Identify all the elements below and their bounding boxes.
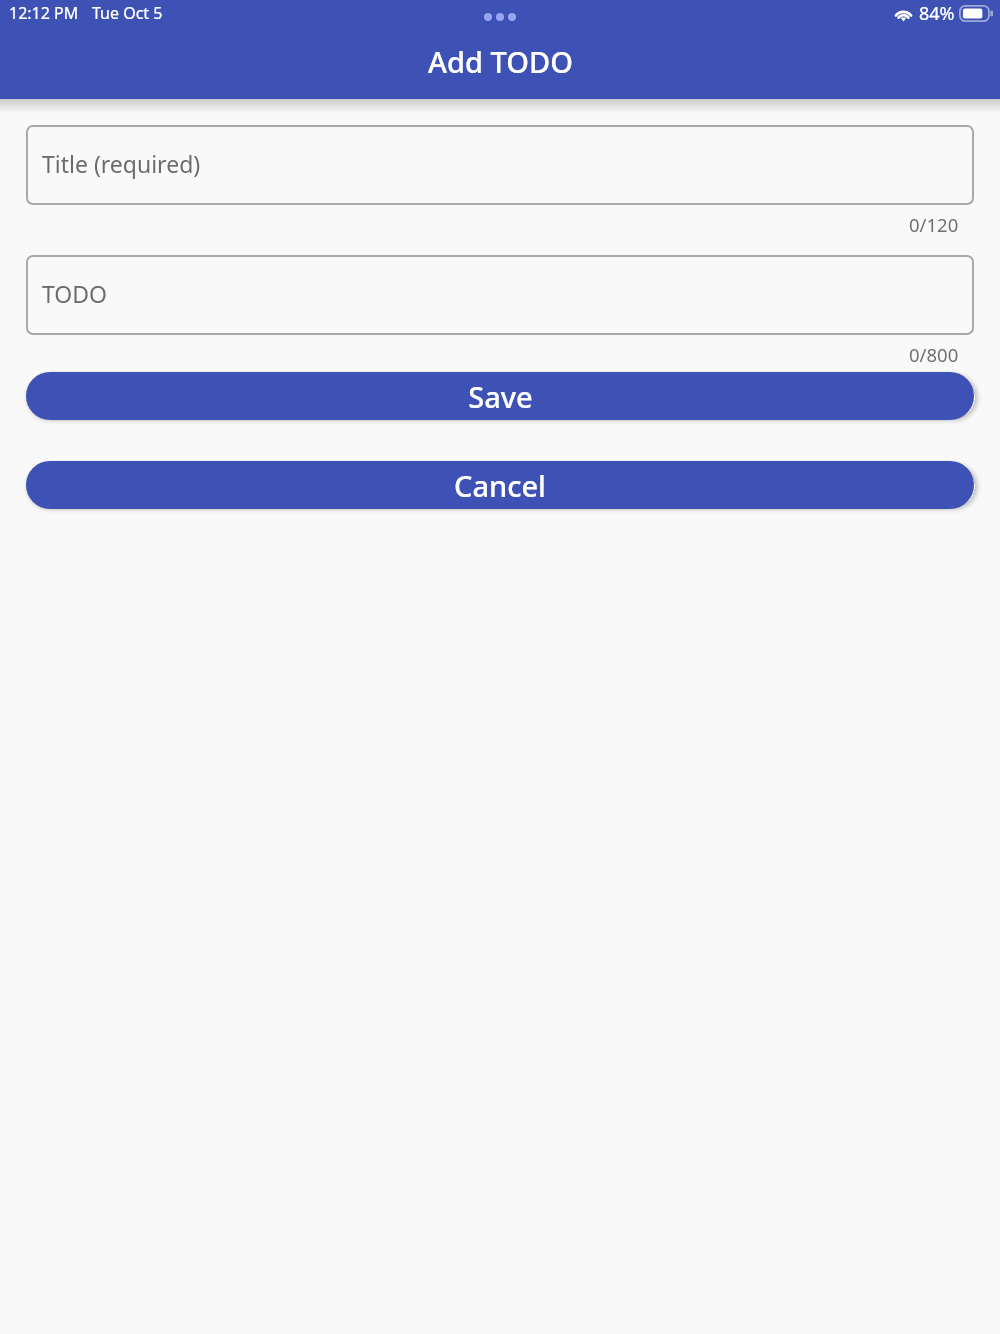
button[interactable]: Title (required) (26, 125, 974, 205)
button[interactable]: Save (26, 372, 974, 420)
staticText: 84% (919, 1, 955, 26)
staticText: Add TODO (428, 42, 573, 81)
other: Battery 84 percent (959, 5, 994, 22)
staticText: 0/800 (909, 342, 959, 364)
staticText: Tue Oct 5 (92, 2, 163, 24)
other: Wi-Fi (893, 5, 914, 22)
staticText: Title (required) (42, 148, 201, 179)
staticText: 0/120 (909, 212, 959, 234)
staticText: TODO (42, 278, 108, 309)
button[interactable]: Cancel (26, 461, 974, 509)
staticText: Save (468, 377, 533, 416)
button[interactable]: TODO (26, 255, 974, 335)
staticText: Cancel (454, 466, 546, 505)
staticText: 12:12 PM (9, 2, 79, 24)
